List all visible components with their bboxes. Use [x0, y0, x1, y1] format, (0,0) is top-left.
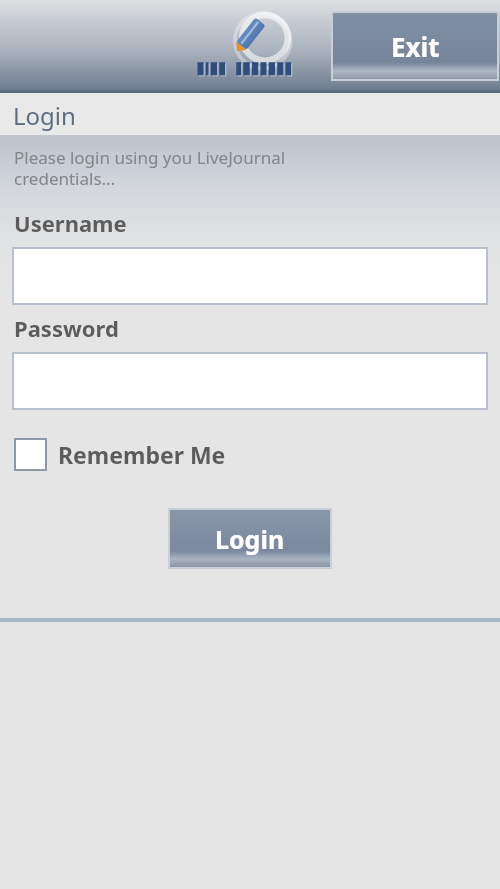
staticText: Login [13, 99, 76, 132]
staticText: Remember Me [58, 439, 226, 470]
staticText: Password [14, 313, 119, 343]
staticText: Please login using you LiveJournal crede… [14, 146, 286, 190]
staticText: Login [215, 522, 285, 556]
button[interactable]: Login [170, 510, 330, 567]
button[interactable]: Remember Me [14, 436, 226, 472]
staticText: Username [14, 208, 127, 238]
button[interactable]: Exit [333, 13, 497, 79]
staticText: Exit [391, 29, 440, 64]
